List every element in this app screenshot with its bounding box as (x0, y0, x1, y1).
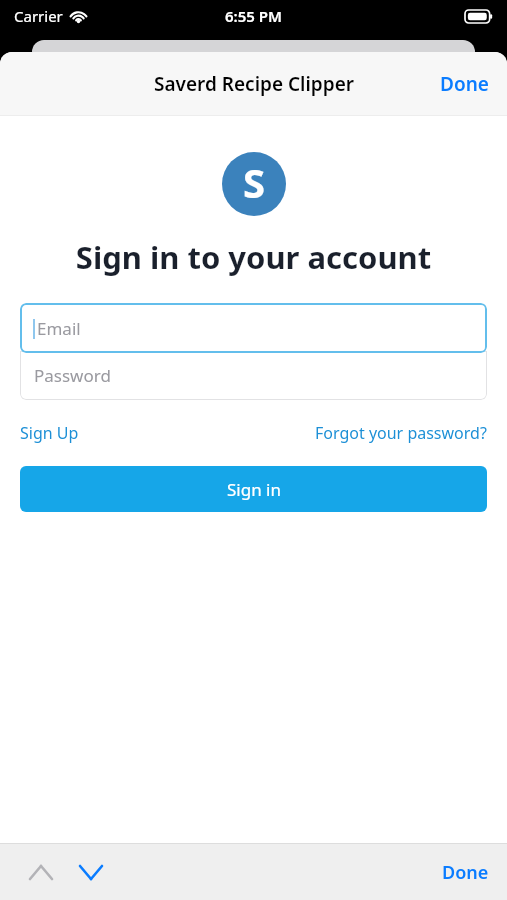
button[interactable]: Forgot your password? (315, 422, 487, 444)
staticText: Sign Up (20, 422, 79, 444)
staticText: Done (442, 860, 489, 885)
staticText: Forgot your password? (315, 422, 487, 444)
button[interactable]: Password (20, 351, 487, 400)
staticText: Done (440, 71, 489, 97)
staticText: Saverd Recipe Clipper (154, 71, 354, 97)
button[interactable]: Next field (70, 851, 112, 893)
button[interactable]: Done (422, 61, 507, 107)
button[interactable]: Done (424, 850, 507, 895)
staticText: Sign in to your account (0, 236, 507, 278)
button[interactable]: Email (20, 303, 487, 353)
staticText: Email (37, 317, 81, 340)
staticText: Carrier (14, 6, 63, 26)
staticText: 6:55 PM (225, 6, 282, 26)
staticText: Password (34, 364, 111, 387)
button[interactable]: Sign in (20, 466, 487, 512)
staticText: S (243, 155, 266, 209)
staticText: Sign in (227, 478, 281, 501)
button[interactable]: Previous field (20, 851, 62, 893)
button[interactable]: Sign Up (20, 422, 79, 444)
